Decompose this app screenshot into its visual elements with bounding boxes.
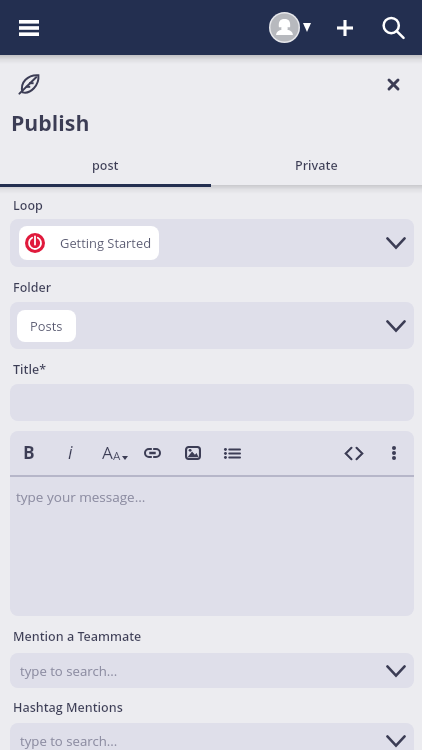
button[interactable]: Compose — [13, 68, 45, 100]
staticText: i — [68, 440, 73, 464]
button[interactable]: Bold — [13, 437, 45, 469]
button[interactable]: type to search... — [10, 653, 414, 688]
button[interactable]: post — [0, 150, 211, 186]
button[interactable]: Image — [177, 437, 209, 469]
button[interactable]: Italic — [54, 437, 86, 469]
button[interactable]: Menu — [13, 12, 45, 44]
button[interactable]: Search — [375, 10, 410, 45]
staticText: Mention a Teammate — [13, 628, 142, 645]
staticText: type your message... — [16, 488, 146, 506]
staticText: type to search... — [20, 732, 118, 750]
button[interactable]: Link — [136, 437, 168, 469]
staticText: Loop — [13, 197, 43, 214]
button[interactable]: Font size — [99, 437, 131, 469]
staticText: Private — [295, 157, 338, 174]
staticText: A — [102, 441, 113, 464]
staticText: Hashtag Mentions — [13, 699, 123, 716]
staticText: post — [92, 157, 119, 174]
button[interactable]: Posts — [10, 302, 414, 349]
button[interactable]: List — [216, 437, 248, 469]
staticText: B — [23, 440, 35, 464]
button[interactable]: Account — [266, 9, 304, 47]
button[interactable]: More — [378, 437, 410, 469]
staticText: A — [113, 448, 121, 464]
staticText: Title* — [13, 361, 47, 378]
button[interactable]: Close — [377, 68, 409, 100]
staticText: Publish — [11, 108, 90, 137]
button[interactable]: Private — [211, 150, 422, 186]
staticText: Posts — [30, 317, 63, 335]
button[interactable]: Getting Started — [10, 219, 414, 267]
button[interactable]: type to search... — [10, 723, 414, 750]
staticText: Getting Started — [60, 234, 152, 252]
button[interactable]: Code — [338, 437, 370, 469]
button[interactable]: Add — [327, 10, 362, 45]
staticText: type to search... — [20, 662, 118, 680]
staticText: Folder — [13, 279, 52, 296]
